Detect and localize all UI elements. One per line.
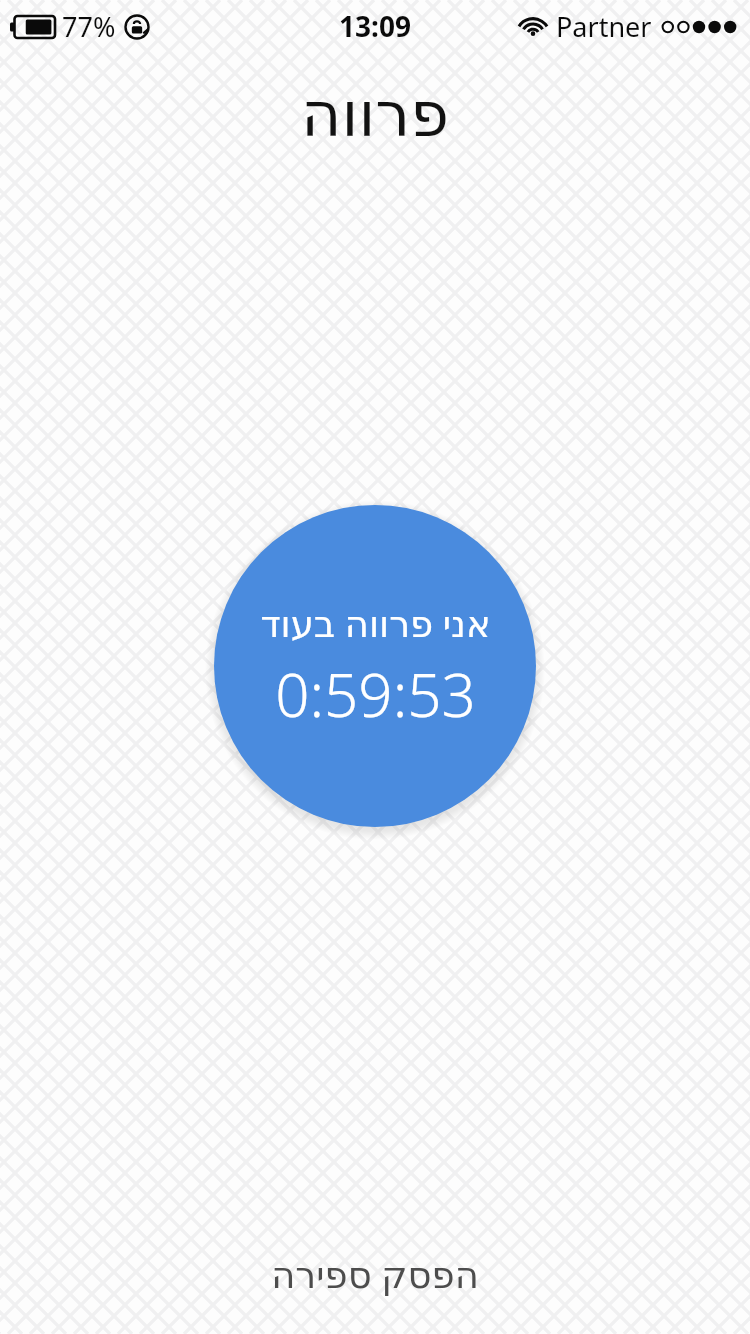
button[interactable]: הפסק ספירה	[0, 1224, 750, 1334]
staticText: 0:59:53	[275, 653, 476, 735]
staticText: Partner	[556, 8, 652, 45]
staticText: 13:09	[339, 7, 411, 45]
staticText: פרווה	[0, 78, 750, 150]
staticText: 77%	[62, 8, 116, 45]
button[interactable]: אני פרווה בעוד	[214, 505, 536, 827]
staticText: אני פרווה בעוד	[260, 597, 491, 647]
staticText: הפסק ספירה	[271, 1248, 479, 1298]
